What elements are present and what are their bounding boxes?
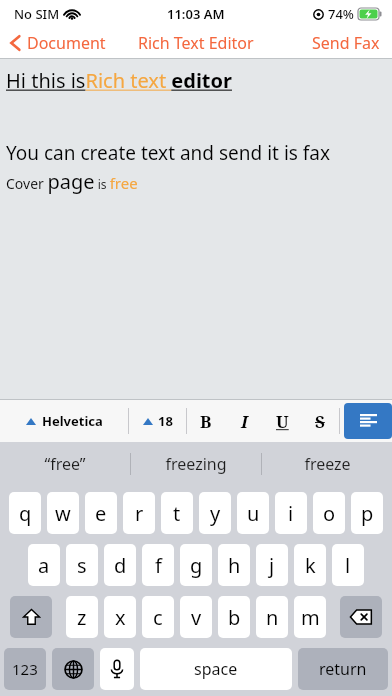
- button[interactable]: U: [263, 400, 301, 442]
- staticText: 123: [12, 659, 38, 679]
- staticText: I: [241, 410, 248, 433]
- button[interactable]: Backspace: [340, 596, 382, 638]
- button[interactable]: Change keyboard: [52, 648, 94, 690]
- staticText: r: [135, 500, 144, 527]
- button[interactable]: Document: [10, 32, 106, 54]
- staticText: space: [194, 658, 238, 680]
- staticText: h: [228, 552, 241, 579]
- button[interactable]: r: [123, 492, 155, 534]
- staticText: v: [191, 604, 202, 631]
- staticText: Document: [27, 32, 106, 54]
- button[interactable]: Shift: [10, 596, 52, 638]
- button[interactable]: 123: [4, 648, 46, 690]
- button[interactable]: S: [301, 400, 339, 442]
- button[interactable]: Send Fax: [312, 32, 380, 54]
- staticText: You can create text and send it is fax: [6, 140, 331, 166]
- staticText: Hi this isRich text editor: [6, 67, 232, 94]
- button[interactable]: a: [28, 544, 60, 586]
- button[interactable]: freeze: [262, 442, 392, 486]
- staticText: 18: [158, 412, 173, 430]
- button[interactable]: b: [218, 596, 250, 638]
- button[interactable]: return: [298, 648, 388, 690]
- staticText: i: [288, 500, 294, 527]
- button[interactable]: e: [85, 492, 117, 534]
- button[interactable]: Rich Text Editor: [138, 32, 254, 54]
- staticText: B: [200, 410, 212, 433]
- staticText: c: [153, 604, 163, 631]
- staticText: w: [55, 500, 71, 527]
- button[interactable]: freezing: [131, 442, 261, 486]
- staticText: j: [269, 552, 275, 579]
- staticText: z: [77, 604, 87, 631]
- button[interactable]: c: [142, 596, 174, 638]
- button[interactable]: j: [256, 544, 288, 586]
- button[interactable]: “free”: [0, 442, 130, 486]
- staticText: u: [247, 500, 260, 527]
- staticText: s: [77, 552, 87, 579]
- staticText: a: [38, 552, 50, 579]
- staticText: m: [301, 604, 320, 631]
- button[interactable]: p: [351, 492, 383, 534]
- button[interactable]: n: [256, 596, 288, 638]
- staticText: “free”: [44, 453, 86, 475]
- button[interactable]: m: [294, 596, 326, 638]
- staticText: g: [190, 552, 203, 579]
- staticText: Cover page is free: [6, 168, 138, 195]
- staticText: n: [266, 604, 279, 631]
- button[interactable]: w: [47, 492, 79, 534]
- button[interactable]: q: [9, 492, 41, 534]
- staticText: Helvetica: [42, 412, 103, 430]
- staticText: 74%: [328, 5, 354, 23]
- button[interactable]: x: [104, 596, 136, 638]
- button[interactable]: h: [218, 544, 250, 586]
- button[interactable]: o: [313, 492, 345, 534]
- button[interactable]: t: [161, 492, 193, 534]
- button[interactable]: space: [140, 648, 292, 690]
- staticText: y: [210, 500, 221, 527]
- staticText: x: [115, 604, 126, 631]
- button[interactable]: Align left: [344, 403, 392, 439]
- staticText: d: [114, 552, 127, 579]
- button[interactable]: z: [66, 596, 98, 638]
- staticText: k: [305, 552, 316, 579]
- button[interactable]: g: [180, 544, 212, 586]
- staticText: 11:03 AM: [167, 5, 225, 23]
- button[interactable]: i: [275, 492, 307, 534]
- button[interactable]: y: [199, 492, 231, 534]
- staticText: t: [173, 500, 181, 527]
- staticText: e: [95, 500, 107, 527]
- staticText: freezing: [165, 453, 227, 475]
- staticText: No SIM: [14, 5, 60, 23]
- staticText: U: [276, 410, 289, 433]
- staticText: o: [323, 500, 336, 527]
- staticText: q: [19, 500, 32, 527]
- button[interactable]: B: [187, 400, 225, 442]
- staticText: S: [315, 410, 325, 433]
- button[interactable]: I: [225, 400, 263, 442]
- button[interactable]: Dictation: [100, 648, 134, 690]
- staticText: return: [319, 658, 367, 680]
- button[interactable]: l: [332, 544, 364, 586]
- button[interactable]: f: [142, 544, 174, 586]
- staticText: p: [361, 500, 374, 527]
- button[interactable]: Helvetica: [0, 400, 128, 442]
- button[interactable]: v: [180, 596, 212, 638]
- button[interactable]: d: [104, 544, 136, 586]
- staticText: b: [228, 604, 241, 631]
- staticText: l: [345, 552, 351, 579]
- button[interactable]: s: [66, 544, 98, 586]
- button[interactable]: u: [237, 492, 269, 534]
- button[interactable]: k: [294, 544, 326, 586]
- staticText: f: [155, 552, 162, 579]
- button[interactable]: 18: [129, 400, 186, 442]
- staticText: freeze: [304, 453, 351, 475]
